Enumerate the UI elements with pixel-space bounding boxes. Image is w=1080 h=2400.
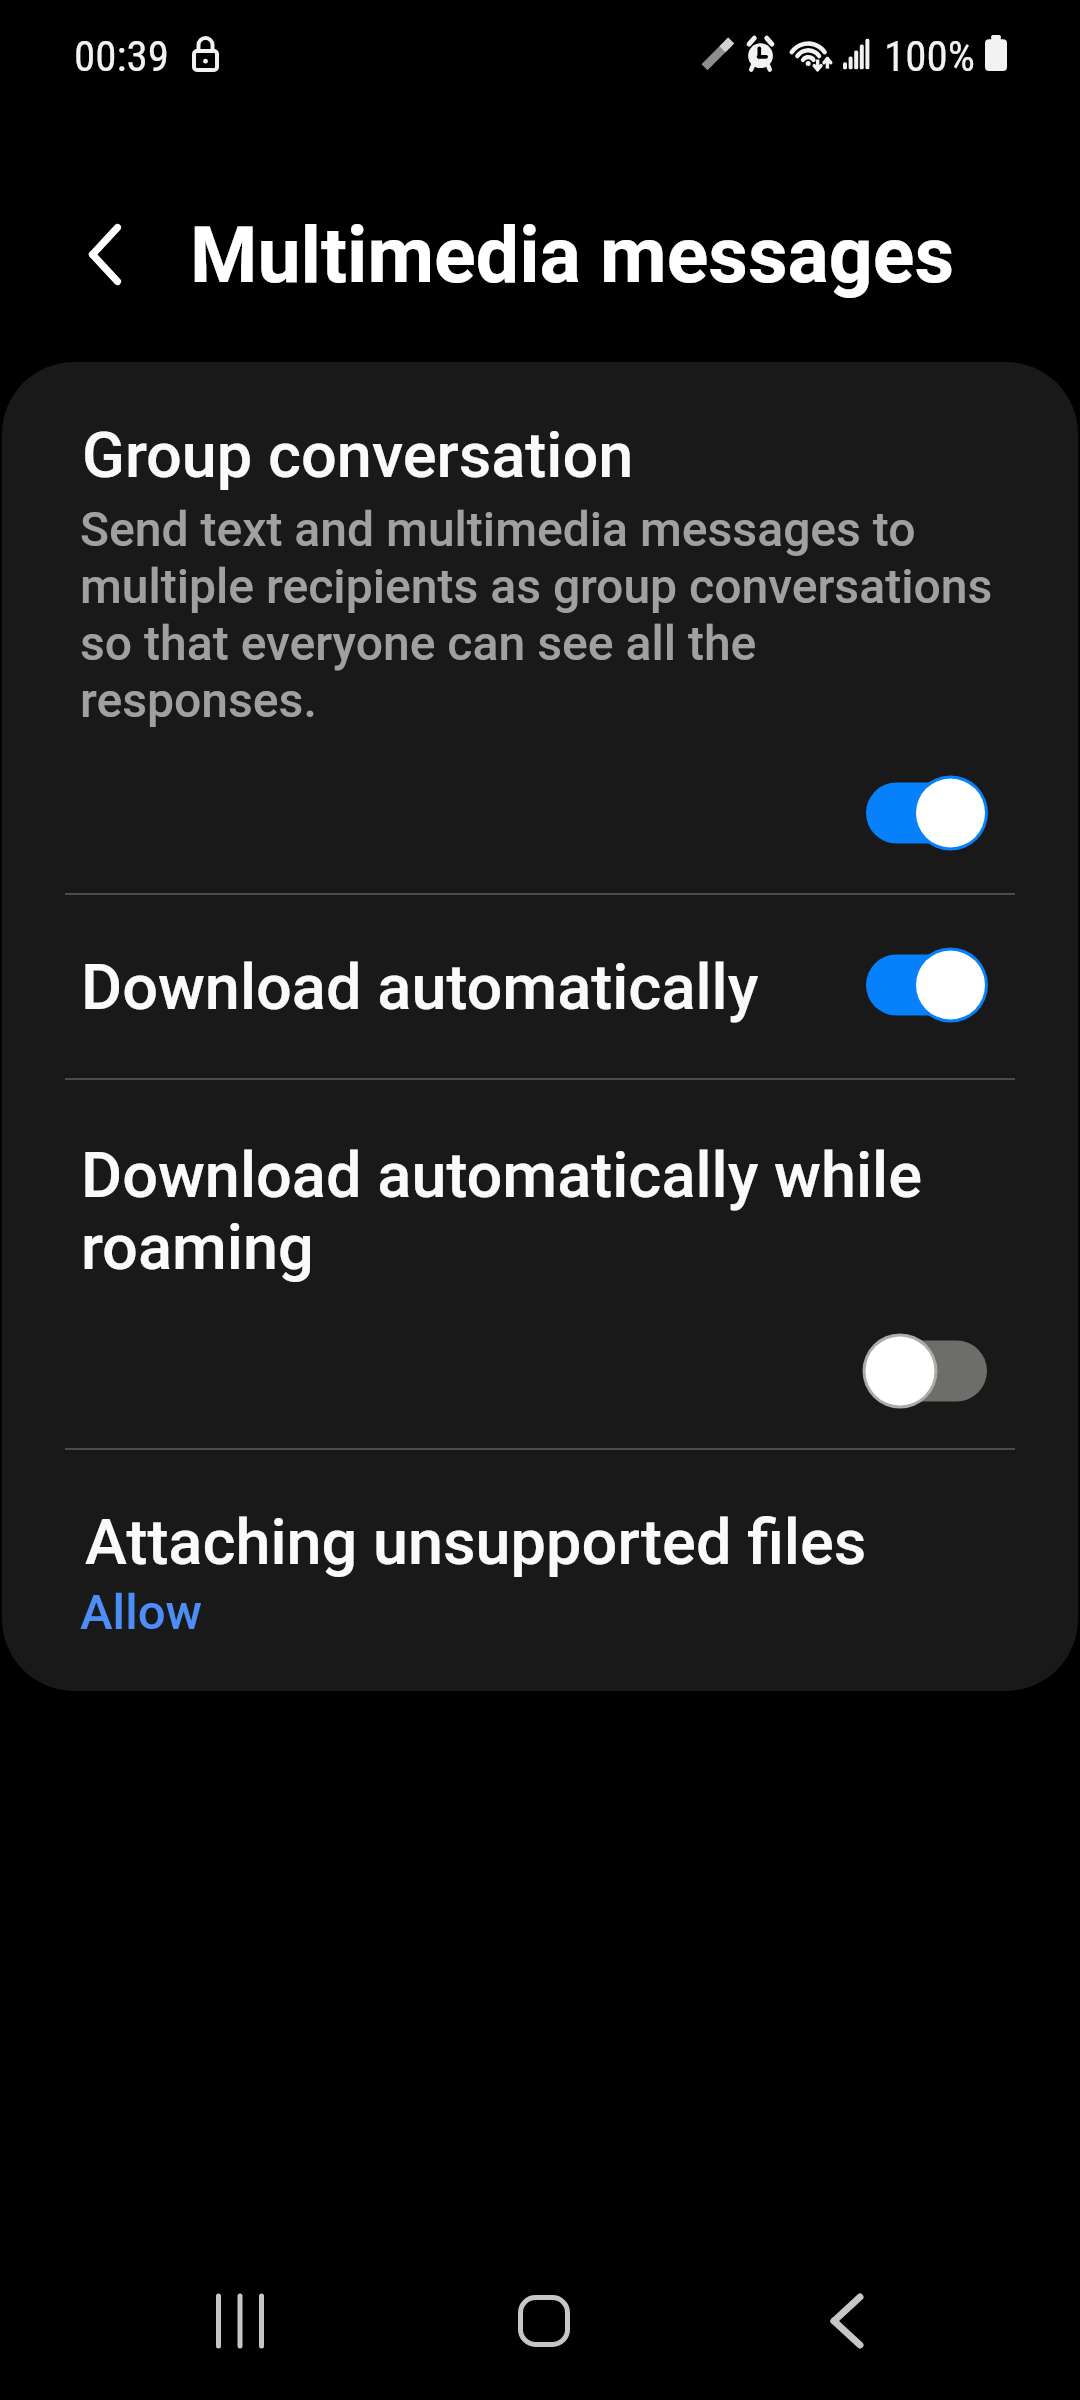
staticText: Send text and multimedia messages to mul…: [80, 501, 1002, 729]
button[interactable]: Group conversation: [2, 362, 1078, 893]
staticText: 00:39: [74, 31, 169, 81]
button[interactable]: Back: [762, 2236, 932, 2400]
staticText: Allow: [80, 1584, 202, 1641]
staticText: Attaching unsupported files: [85, 1506, 867, 1580]
button[interactable]: Home: [459, 2236, 629, 2400]
button[interactable]: Off: [862, 1332, 990, 1410]
staticText: Multimedia messages: [190, 211, 955, 301]
staticText: Download automatically while roaming: [81, 1140, 961, 1284]
button[interactable]: Download automatically while roaming: [2, 1080, 1078, 1448]
button[interactable]: Recent apps: [155, 2236, 325, 2400]
staticText: Group conversation: [82, 419, 634, 493]
button[interactable]: On: [862, 774, 990, 852]
button[interactable]: Download automatically: [2, 895, 1078, 1080]
button[interactable]: On: [862, 946, 990, 1024]
button[interactable]: Navigate up: [45, 194, 165, 314]
button[interactable]: Attaching unsupported files: [2, 1450, 1078, 1691]
staticText: Download automatically: [81, 951, 759, 1025]
staticText: 100%: [884, 31, 975, 81]
